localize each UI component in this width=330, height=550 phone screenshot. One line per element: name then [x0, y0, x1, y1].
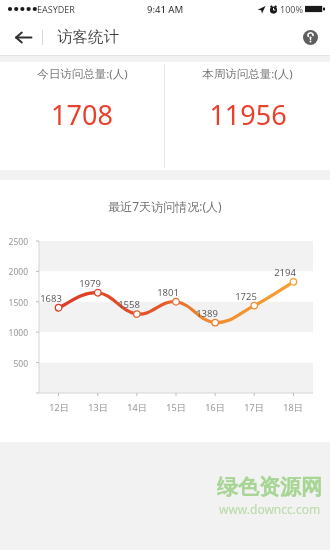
staticText: 1725: [230, 290, 262, 303]
staticText: 访客统计: [57, 27, 119, 47]
staticText: 2500: [2, 236, 28, 248]
staticText: 17日: [241, 401, 267, 413]
staticText: 1389: [191, 307, 223, 320]
button[interactable]: Help: [299, 26, 322, 49]
staticText: 2194: [269, 266, 301, 279]
staticText: 13日: [85, 401, 111, 413]
staticText: 1708: [51, 96, 113, 133]
button[interactable]: 本周访问总量:(人): [165, 62, 330, 139]
staticText: 1979: [74, 277, 106, 290]
staticText: 1801: [152, 286, 184, 299]
staticText: EASYDER: [37, 3, 75, 15]
button[interactable]: Visitor trend chart: [0, 228, 330, 428]
staticText: 今日访问总量:(人): [37, 66, 128, 82]
staticText: 18日: [280, 401, 306, 413]
staticText: 1500: [2, 297, 28, 309]
staticText: 15日: [163, 401, 189, 413]
staticText: 16日: [202, 401, 228, 413]
staticText: 14日: [124, 401, 150, 413]
staticText: 最近7天访问情况:(人): [0, 198, 330, 214]
staticText: 1683: [35, 292, 67, 305]
staticText: www.downcc.com: [219, 501, 321, 517]
staticText: 100%: [280, 3, 303, 15]
staticText: 2000: [2, 266, 28, 278]
button[interactable]: 今日访问总量:(人): [0, 62, 164, 139]
staticText: 9:41 AM: [147, 3, 184, 16]
staticText: 绿色资源网: [217, 474, 322, 500]
staticText: 1000: [2, 327, 28, 339]
staticText: 本周访问总量:(人): [202, 66, 293, 82]
button[interactable]: Back: [12, 26, 35, 49]
staticText: 11956: [209, 96, 287, 133]
staticText: 500: [2, 358, 28, 370]
staticText: 1558: [113, 298, 145, 311]
staticText: 12日: [46, 401, 72, 413]
